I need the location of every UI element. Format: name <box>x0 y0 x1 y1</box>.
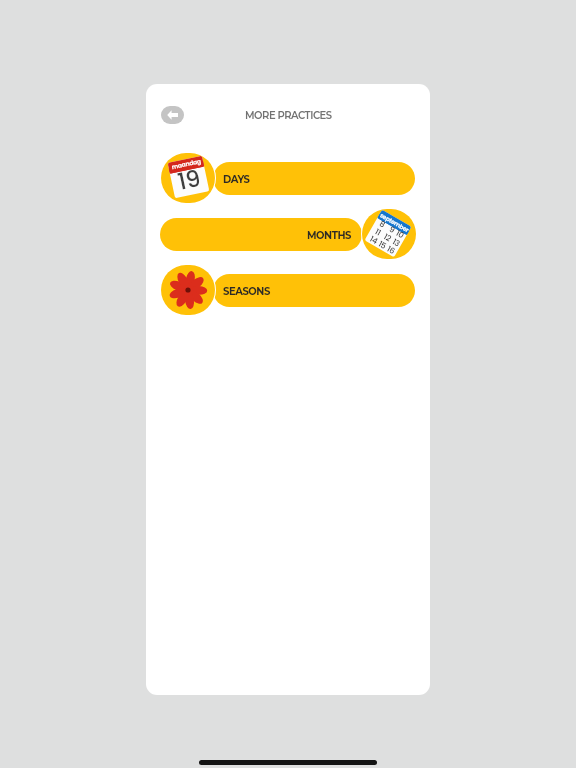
staticText: 16 <box>386 243 397 255</box>
staticText: 19 <box>174 162 204 198</box>
staticText: 9 <box>388 224 397 234</box>
button[interactable]: DAYS <box>146 152 430 204</box>
staticText: 15 <box>377 238 389 250</box>
staticText: 10 <box>395 228 406 240</box>
staticText: SEASONS <box>223 285 270 297</box>
staticText: DAYS <box>223 173 250 185</box>
staticText: 8 <box>378 218 387 229</box>
button[interactable]: Back <box>161 106 184 124</box>
staticText: 14 <box>368 233 380 245</box>
staticText: 12 <box>382 231 393 242</box>
staticText: MORE PRACTICES <box>245 109 332 121</box>
staticText: MONTHS <box>307 229 352 241</box>
button[interactable]: MONTHS <box>146 208 430 260</box>
button[interactable]: SEASONS <box>146 264 430 316</box>
staticText: september <box>378 211 411 235</box>
staticText: maandag <box>171 157 202 171</box>
staticText: 13 <box>391 236 402 247</box>
staticText: 11 <box>374 226 383 236</box>
